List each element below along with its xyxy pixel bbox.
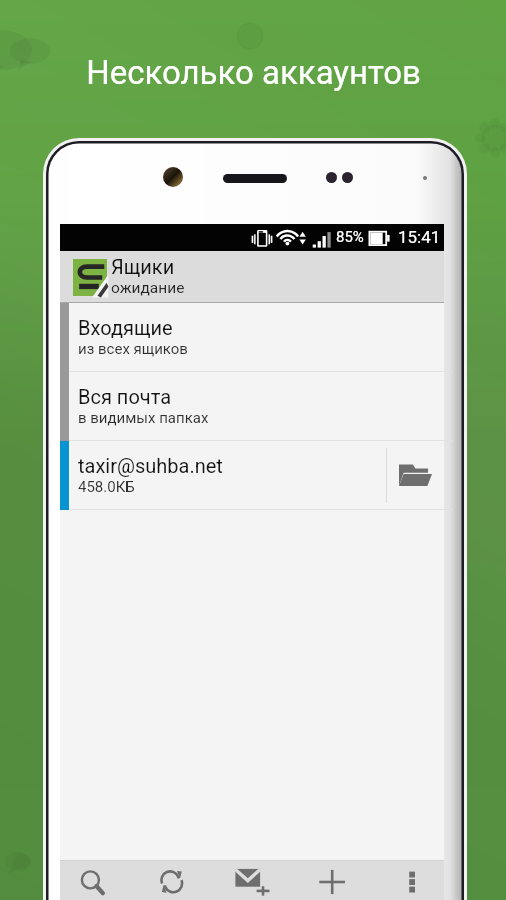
- button[interactable]: Ещё: [392, 860, 436, 900]
- staticText: Несколько аккаунтов: [86, 53, 421, 92]
- staticText: 15:41: [398, 227, 441, 247]
- button[interactable]: Папки: [387, 441, 444, 510]
- button[interactable]: Обновить: [146, 860, 198, 900]
- staticText: Вся почта: [78, 385, 172, 408]
- button[interactable]: Добавить: [308, 860, 358, 900]
- staticText: Входящие: [78, 316, 173, 339]
- staticText: из всех ящиков: [78, 340, 188, 358]
- button[interactable]: Ящики: [60, 251, 444, 303]
- staticText: 85%: [336, 228, 364, 246]
- staticText: Ящики: [111, 255, 175, 278]
- staticText: в видимых папках: [78, 409, 209, 427]
- button[interactable]: Новое письмо: [223, 860, 279, 900]
- staticText: taxir@suhba.net: [78, 454, 223, 477]
- button[interactable]: Поиск: [66, 860, 116, 900]
- staticText: ожидание: [111, 279, 185, 297]
- button[interactable]: Вся почта: [60, 372, 444, 441]
- staticText: 458.0КБ: [78, 478, 135, 496]
- button[interactable]: Входящие: [60, 303, 444, 372]
- button[interactable]: taxir@suhba.net: [60, 441, 444, 510]
